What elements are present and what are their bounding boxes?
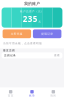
button[interactable]: 首页 bbox=[0, 87, 21, 100]
button[interactable]: 立即充值 bbox=[3, 29, 31, 38]
staticText: 首页 bbox=[8, 94, 14, 97]
staticText: 交易记录 bbox=[4, 54, 16, 57]
button[interactable]: 提现记录 bbox=[33, 29, 61, 38]
staticText: 提现记录 bbox=[41, 32, 53, 35]
staticText: 立即充值 bbox=[11, 32, 23, 35]
button[interactable]: 我的 bbox=[43, 87, 64, 100]
staticText: 最近交易 bbox=[3, 49, 15, 52]
staticText: 235 bbox=[23, 14, 38, 24]
staticText: 查看 bbox=[54, 54, 60, 57]
staticText: 账单 bbox=[29, 94, 35, 97]
staticText: 元 bbox=[38, 20, 41, 23]
button[interactable]: 交易记录 bbox=[2, 52, 62, 58]
staticText: 我的账户 bbox=[24, 1, 40, 6]
staticText: 账户总资产（元） bbox=[20, 10, 44, 13]
staticText: 我的 bbox=[50, 94, 56, 97]
staticText: 当前可用余额，点击查看明细 bbox=[3, 42, 42, 45]
button[interactable]: 账单 bbox=[21, 87, 43, 100]
